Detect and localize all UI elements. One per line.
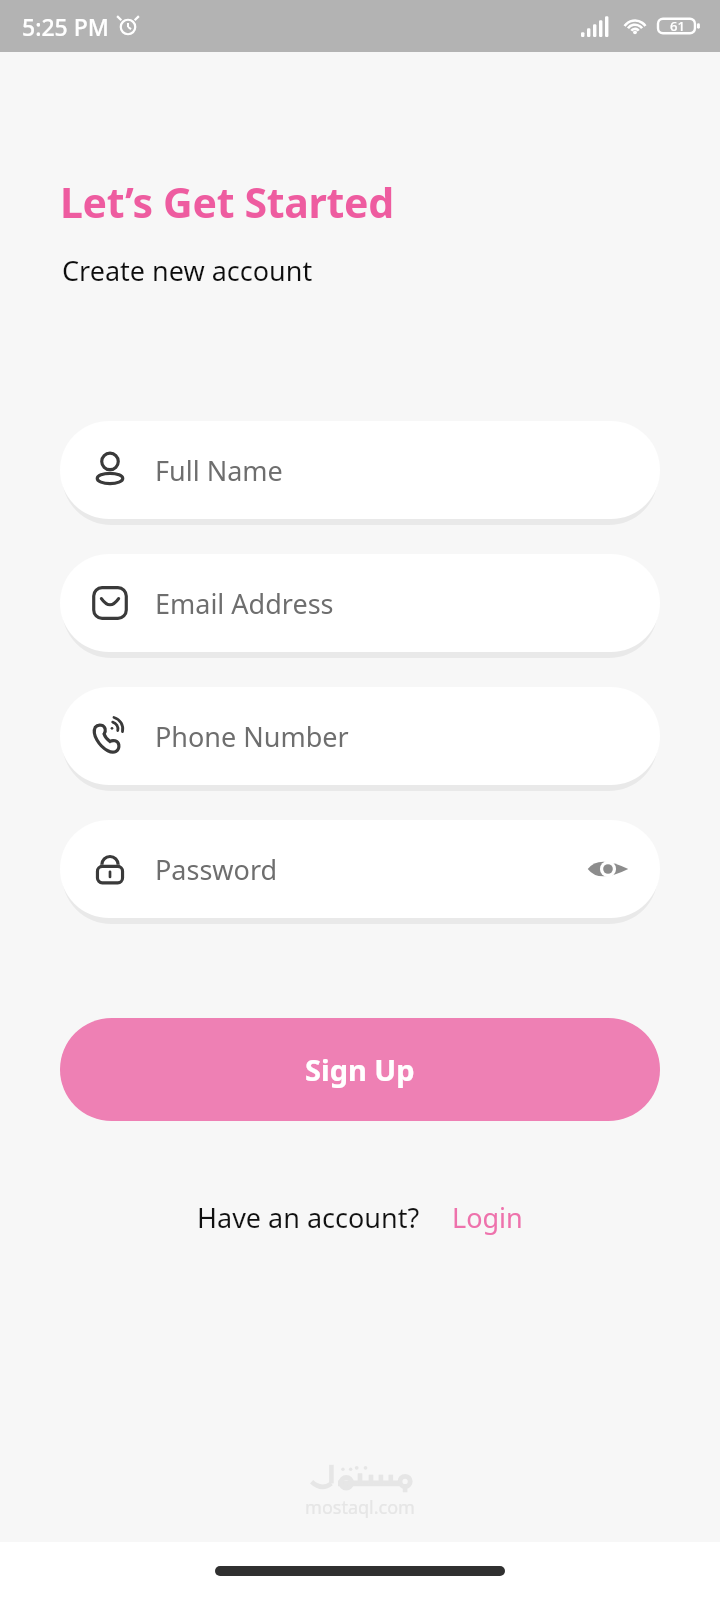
staticText: Email Address [155, 585, 334, 622]
staticText: Sign Up [305, 1050, 415, 1089]
button[interactable]: Phone Number [60, 687, 660, 785]
button[interactable]: Login [452, 1199, 523, 1236]
staticText: Login [452, 1199, 523, 1236]
button[interactable]: Sign Up [60, 1018, 660, 1121]
button[interactable]: Show password [582, 843, 634, 895]
staticText: Phone Number [155, 718, 349, 755]
staticText: Full Name [155, 452, 283, 489]
staticText: mostaql.com [305, 1495, 415, 1520]
staticText: 5:25 PM [22, 11, 109, 42]
button[interactable]: Email Address [60, 554, 660, 652]
button[interactable]: Password [60, 820, 660, 918]
staticText: Have an account? [197, 1199, 420, 1236]
button[interactable]: Full Name [60, 421, 660, 519]
staticText: 61 [670, 17, 685, 35]
staticText: Let’s Get Started [60, 174, 394, 230]
staticText: Create new account [62, 252, 313, 289]
staticText: Password [155, 851, 278, 888]
